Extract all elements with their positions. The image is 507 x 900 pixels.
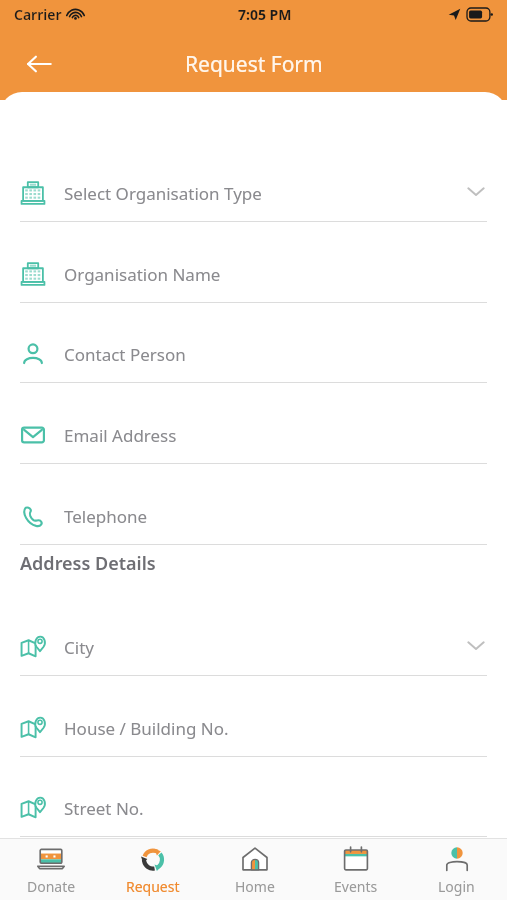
- button[interactable]: Request: [102, 839, 204, 900]
- button[interactable]: Select Organisation Type: [20, 172, 487, 222]
- staticText: Donate: [27, 877, 76, 896]
- button[interactable]: House / Building No.: [20, 707, 487, 757]
- button[interactable]: Back: [16, 41, 62, 87]
- staticText: Organisation Name: [64, 263, 221, 286]
- button[interactable]: City: [20, 626, 487, 676]
- staticText: Carrier: [14, 5, 62, 24]
- staticText: Select Organisation Type: [64, 182, 262, 205]
- button[interactable]: Email Address: [20, 414, 487, 464]
- staticText: 7:05 PM: [238, 5, 292, 24]
- staticText: Email Address: [64, 424, 177, 447]
- button[interactable]: Donate: [0, 839, 102, 900]
- staticText: Street No.: [64, 797, 144, 820]
- staticText: Request: [126, 877, 180, 896]
- staticText: Request Form: [185, 50, 323, 79]
- button[interactable]: Login: [406, 839, 507, 900]
- button[interactable]: Street No.: [20, 787, 487, 837]
- staticText: Login: [438, 877, 475, 896]
- staticText: Address Details: [20, 551, 156, 576]
- staticText: Contact Person: [64, 343, 186, 366]
- button[interactable]: Telephone: [20, 495, 487, 545]
- button[interactable]: Contact Person: [20, 333, 487, 383]
- button[interactable]: Events: [305, 839, 406, 900]
- staticText: Events: [334, 877, 378, 896]
- staticText: City: [64, 636, 94, 659]
- staticText: Home: [235, 877, 275, 896]
- staticText: Telephone: [64, 505, 148, 528]
- button[interactable]: Organisation Name: [20, 253, 487, 303]
- staticText: House / Building No.: [64, 717, 229, 740]
- button[interactable]: Home: [204, 839, 305, 900]
